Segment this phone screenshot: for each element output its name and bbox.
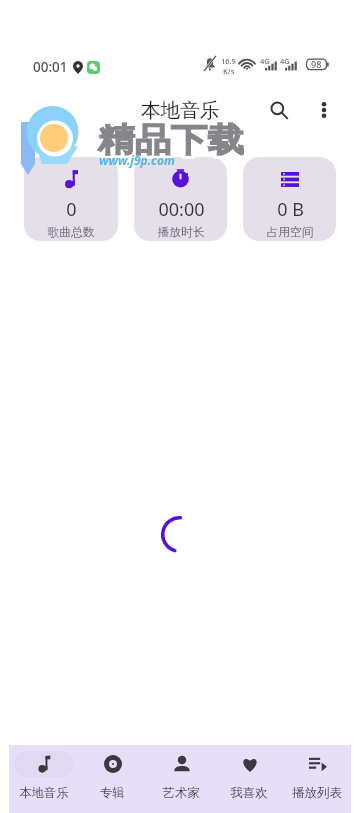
staticText: 精品下载 — [101, 116, 247, 157]
staticText: 16.9 — [221, 56, 236, 66]
button[interactable]: More options — [302, 88, 346, 132]
staticText: 精品下载 — [101, 119, 247, 160]
button[interactable]: 专辑 — [78, 745, 147, 813]
staticText: 精品下载 — [101, 122, 247, 163]
staticText: 精品下载 — [95, 122, 240, 163]
staticText: 本地音乐 — [19, 785, 69, 801]
staticText: 精品下载 — [95, 116, 240, 157]
staticText: K/s — [223, 66, 235, 76]
button[interactable]: Search — [257, 88, 301, 132]
button[interactable]: 播放列表 — [283, 745, 351, 813]
button[interactable]: 本地音乐 — [9, 745, 78, 813]
staticText: 精品下载 — [95, 119, 240, 160]
button[interactable]: 0 — [24, 157, 118, 241]
staticText: 艺术家 — [162, 785, 200, 801]
staticText: 4G — [280, 56, 290, 66]
staticText: 播放时长 — [157, 225, 205, 240]
staticText: 精品下载 — [98, 122, 244, 163]
staticText: 占用空间 — [266, 225, 314, 240]
button[interactable]: 我喜欢 — [215, 745, 283, 813]
staticText: www.j9p.com — [99, 152, 175, 168]
staticText: 我喜欢 — [230, 785, 268, 801]
staticText: 00:00 — [158, 197, 205, 222]
button[interactable]: 00:00 — [134, 157, 227, 241]
staticText: 播放列表 — [292, 785, 342, 801]
staticText: 精品下载 — [98, 116, 244, 157]
button[interactable]: 0 B — [243, 157, 336, 241]
staticText: 精品下载 — [98, 119, 244, 160]
staticText: 0 B — [277, 197, 304, 222]
staticText: 专辑 — [100, 785, 125, 801]
staticText: 00:01 — [33, 58, 68, 76]
button[interactable]: 艺术家 — [147, 745, 215, 813]
staticText: 本地音乐 — [141, 98, 220, 123]
staticText: 4G — [260, 56, 270, 66]
staticText: 0 — [66, 197, 77, 222]
staticText: 98 — [311, 58, 322, 70]
staticText: 歌曲总数 — [47, 225, 95, 240]
